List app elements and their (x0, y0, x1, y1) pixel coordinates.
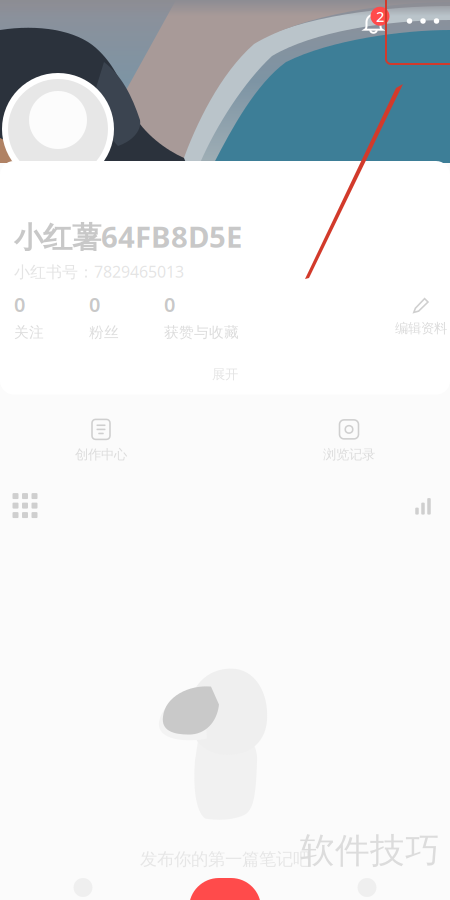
staticText: 0 (89, 291, 100, 317)
staticText: 粉丝 (89, 323, 119, 341)
button[interactable]: Home (46, 878, 120, 900)
staticText: 软件技巧 (300, 829, 440, 872)
button[interactable]: 0 (164, 296, 239, 336)
button[interactable]: 0 (89, 296, 164, 336)
staticText: 浏览记录 (323, 446, 375, 463)
button[interactable]: 浏览记录 (304, 417, 394, 465)
button[interactable]: Statistics (400, 489, 446, 523)
staticText: 发布你的第一篇笔记吧 (140, 849, 310, 870)
button[interactable]: 编辑资料 (392, 296, 450, 336)
button[interactable]: 0 (14, 296, 89, 336)
button[interactable]: More (399, 0, 447, 43)
button[interactable]: 展开 (202, 364, 248, 385)
staticText: 小红薯64FB8D5E (14, 217, 242, 256)
button[interactable]: Grid view (2, 489, 48, 523)
button[interactable]: 创作中心 (56, 417, 146, 465)
staticText: 展开 (212, 366, 238, 383)
staticText: 编辑资料 (395, 320, 447, 336)
button[interactable]: Notifications (353, 0, 399, 43)
staticText: 创作中心 (75, 446, 127, 463)
staticText: 关注 (14, 323, 44, 341)
staticText: 获赞与收藏 (164, 323, 239, 341)
staticText: 小红书号：7829465013 (14, 261, 184, 282)
button[interactable]: Create post (189, 878, 261, 900)
staticText: 0 (164, 291, 175, 317)
button[interactable]: Profile (330, 878, 404, 900)
staticText: 2 (376, 6, 384, 26)
staticText: 0 (14, 291, 25, 317)
